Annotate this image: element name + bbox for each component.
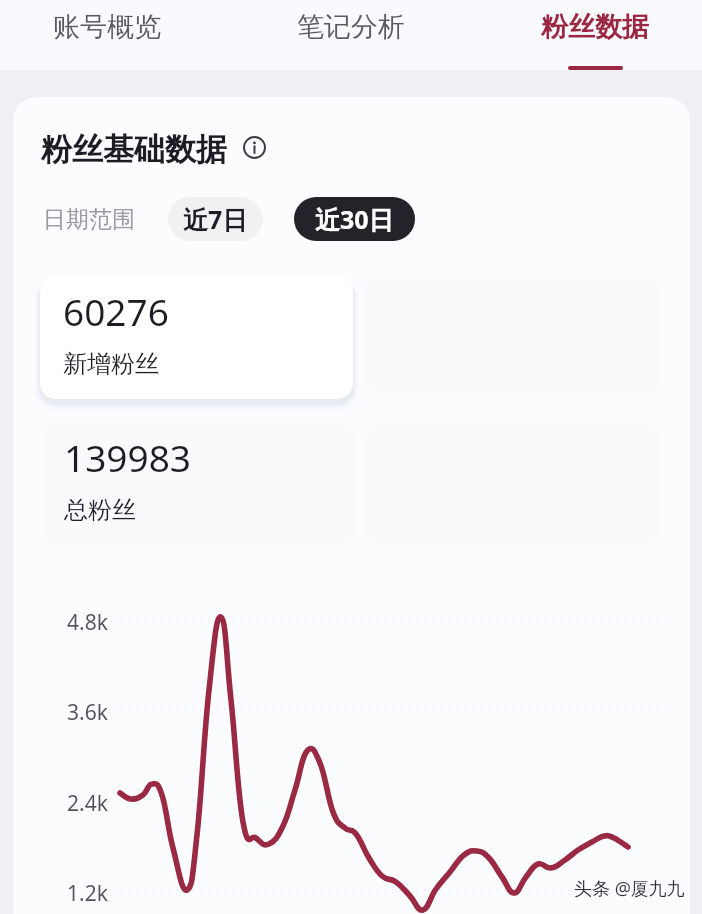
staticText: 4.8k xyxy=(67,608,108,637)
staticText: 头条 @厦九九 xyxy=(574,876,685,901)
button[interactable]: 近30日 xyxy=(294,197,415,241)
staticText: 粉丝数据 xyxy=(541,10,649,44)
other: Daily new follower trend chart xyxy=(13,567,690,914)
staticText: 粉丝基础数据 xyxy=(41,130,227,169)
staticText: 新增粉丝 xyxy=(63,349,159,379)
staticText: 2.4k xyxy=(67,789,108,818)
button[interactable]: 笔记分析 xyxy=(290,0,412,70)
button[interactable]: About follower statistics xyxy=(243,136,266,159)
staticText: 账号概览 xyxy=(53,10,161,44)
staticText: 139983 xyxy=(64,432,191,482)
staticText: 1.2k xyxy=(67,879,108,908)
button[interactable]: 粉丝数据 xyxy=(534,0,656,70)
staticText: 日期范围 xyxy=(43,205,135,234)
staticText: 3.6k xyxy=(67,698,108,727)
button[interactable]: 近7日 xyxy=(168,197,263,241)
staticText: 笔记分析 xyxy=(297,10,405,44)
staticText: 60276 xyxy=(63,286,169,336)
button[interactable]: 账号概览 xyxy=(46,0,168,70)
button[interactable]: 60276 xyxy=(40,277,353,399)
button[interactable]: 139983 xyxy=(41,423,354,545)
staticText: 总粉丝 xyxy=(64,495,136,525)
staticText: 近7日 xyxy=(183,202,248,236)
staticText: 近30日 xyxy=(315,202,394,236)
